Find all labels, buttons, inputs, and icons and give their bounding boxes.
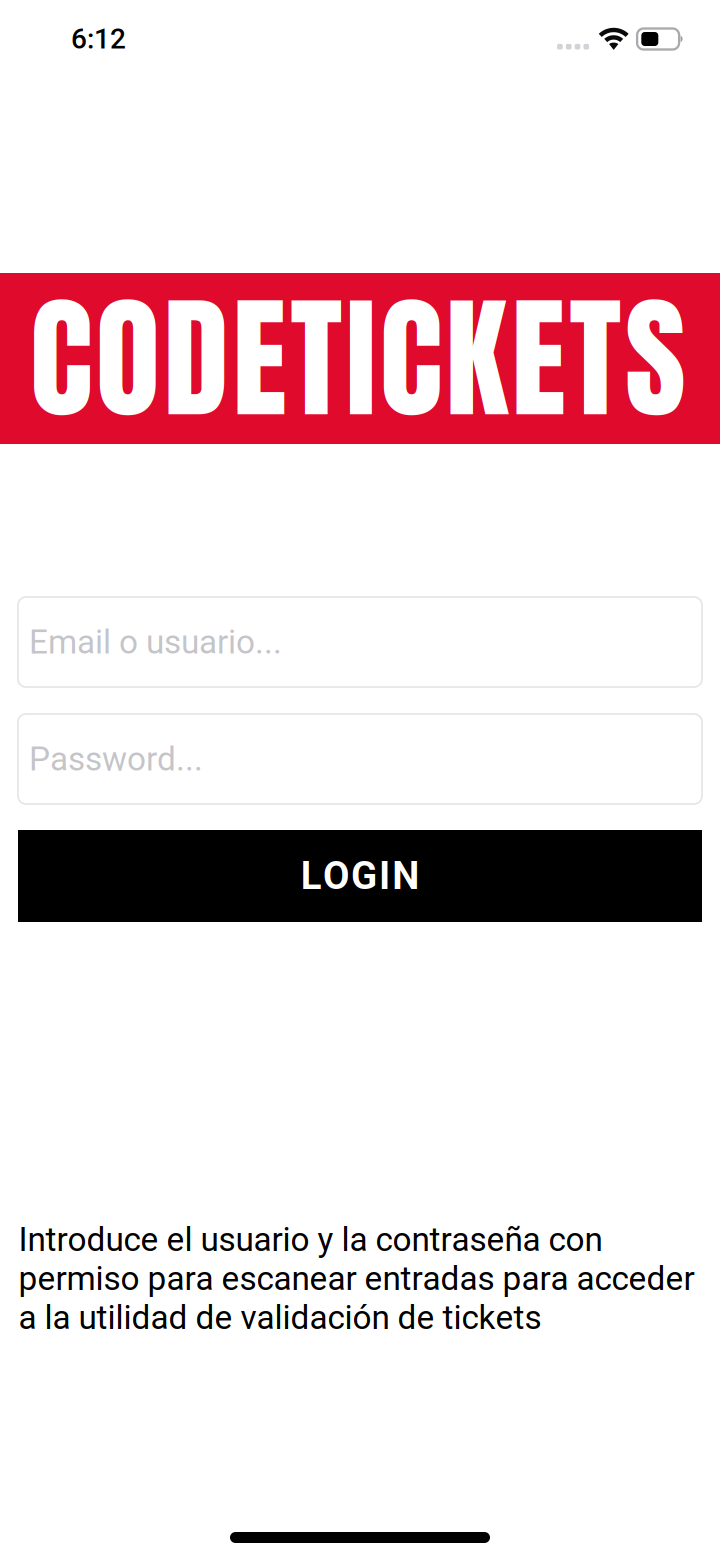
- staticText: Email o usuario...: [29, 622, 282, 662]
- staticText: Password...: [29, 739, 203, 779]
- staticText: CODETICKETS: [30, 259, 686, 458]
- staticText: 6:12: [71, 23, 126, 55]
- button[interactable]: Password...: [18, 714, 702, 804]
- button[interactable]: LOGIN: [18, 830, 702, 922]
- staticText: Introduce el usuario y la contraseña con…: [18, 1220, 694, 1337]
- button[interactable]: Email o usuario...: [18, 597, 702, 687]
- staticText: LOGIN: [301, 853, 419, 898]
